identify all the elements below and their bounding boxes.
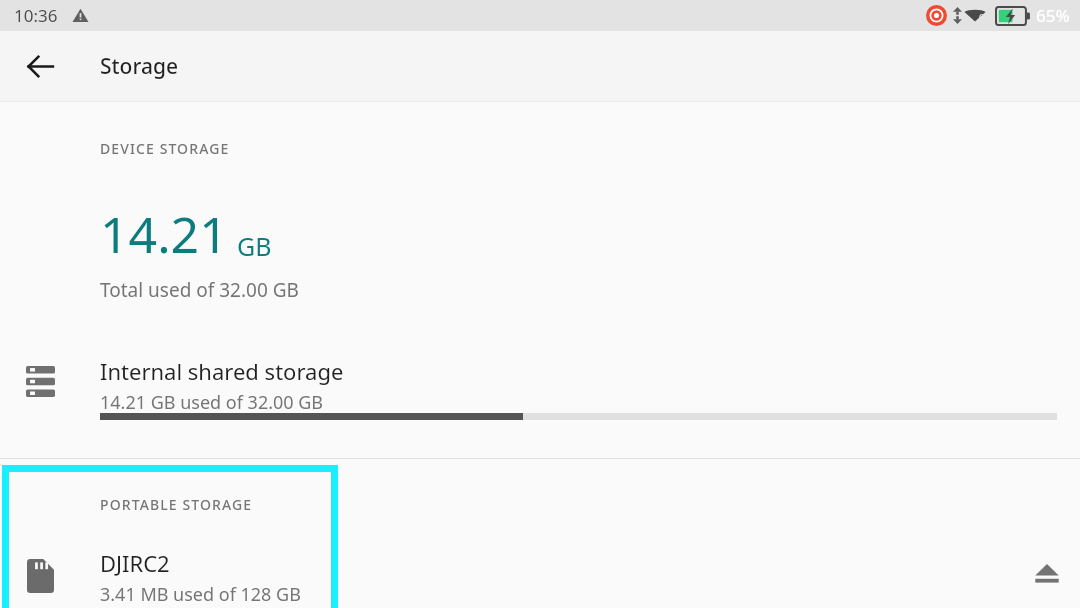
staticText: DEVICE STORAGE: [100, 139, 230, 158]
button[interactable]: DJIRC2: [0, 541, 1080, 608]
staticText: 65%: [1036, 4, 1070, 27]
staticText: 14.21 GB used of 32.00 GB: [100, 390, 324, 415]
staticText: Total used of 32.00 GB: [100, 277, 299, 303]
staticText: 10:36: [14, 4, 58, 27]
staticText: DJIRC2: [100, 548, 170, 578]
button[interactable]: Internal shared storage: [0, 343, 1080, 438]
staticText: Internal shared storage: [100, 356, 344, 386]
staticText: 6: [979, 12, 984, 23]
button[interactable]: Back: [8, 34, 72, 98]
staticText: GB: [237, 229, 272, 263]
staticText: 3.41 MB used of 128 GB: [100, 582, 301, 607]
staticText: PORTABLE STORAGE: [100, 495, 253, 514]
staticText: Storage: [100, 52, 178, 81]
button[interactable]: Eject: [1019, 545, 1075, 601]
staticText: 14.21: [100, 200, 228, 268]
